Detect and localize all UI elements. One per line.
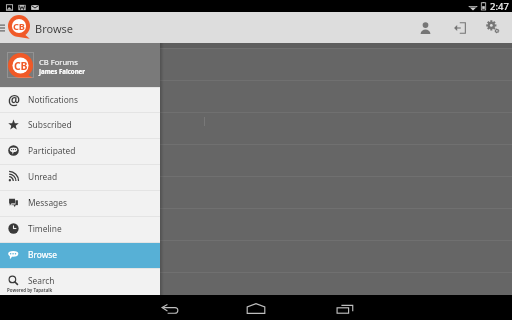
button[interactable]: Timeline — [0, 217, 160, 242]
button[interactable]: Log out — [442, 12, 476, 43]
staticText: Timeline — [28, 223, 62, 234]
button[interactable]: Settings — [476, 12, 510, 43]
staticText: 2:47 — [490, 0, 509, 12]
staticText: @ — [8, 91, 21, 109]
button[interactable]: @ — [0, 88, 160, 113]
staticText: Powered by Tapatalk — [7, 287, 53, 293]
button[interactable]: Home — [232, 295, 280, 320]
button[interactable]: Profile — [408, 12, 442, 43]
staticText: Subscribed — [28, 119, 72, 130]
staticText: Notifications — [28, 94, 78, 105]
button[interactable]: CB — [0, 43, 160, 87]
button[interactable]: Browse — [0, 243, 160, 268]
button[interactable]: Recent apps — [321, 295, 369, 320]
button[interactable]: Participated — [0, 139, 160, 164]
staticText: CB Forums — [39, 57, 78, 67]
button[interactable]: Open navigation drawer — [0, 12, 9, 43]
staticText: Browse — [28, 249, 58, 260]
button[interactable]: Back — [146, 295, 194, 320]
staticText: Participated — [28, 145, 76, 156]
staticText: James Falconer — [39, 67, 85, 75]
staticText: Messages — [28, 197, 67, 208]
button[interactable]: Messages — [0, 191, 160, 216]
staticText: CB — [14, 59, 28, 73]
button[interactable]: Subscribed — [0, 113, 160, 138]
button[interactable]: Search — [0, 269, 160, 294]
button[interactable]: Unread — [0, 165, 160, 190]
staticText: Browse — [35, 21, 74, 36]
staticText: CB — [13, 20, 25, 33]
staticText: Unread — [28, 171, 58, 182]
staticText: Search — [28, 275, 55, 286]
